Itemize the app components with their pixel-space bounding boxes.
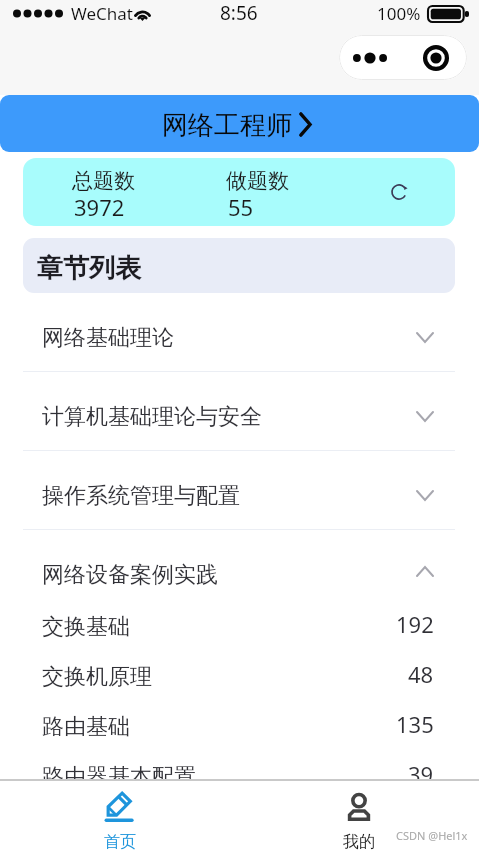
staticText: 我的 [343,832,375,850]
staticText: 操作系统管理与配置 [42,482,240,510]
button[interactable]: 我的 [239,779,479,850]
staticText: 100% [377,2,421,25]
button[interactable]: More menu [339,35,467,80]
button[interactable]: 操作系统管理与配置 [0,451,479,529]
staticText: 章节列表 [37,252,141,285]
staticText: WeChat [71,2,133,25]
staticText: 网络基础理论 [42,324,174,352]
staticText: 总题数 [72,168,135,194]
staticText: 路由基础 [42,713,130,741]
button[interactable]: 交换基础 [0,608,479,658]
staticText: 39 [408,759,434,789]
staticText: 交换机原理 [42,663,152,691]
staticText: 交换基础 [42,613,130,641]
staticText: 路由器基本配置 [42,763,196,791]
button[interactable]: 网络设备案例实践 [0,530,479,608]
button[interactable]: 路由基础 [0,708,479,758]
staticText: 3972 [74,192,125,222]
staticText: 8:56 [220,0,258,26]
staticText: CSDN @Hel1x [396,828,468,843]
button[interactable]: 交换机原理 [0,658,479,708]
staticText: 首页 [104,832,136,850]
staticText: 网络工程师 [162,109,292,142]
button[interactable]: Refresh [386,179,412,205]
button[interactable]: 路由器基本配置 [0,758,479,808]
button[interactable]: 网络工程师 [0,95,479,152]
staticText: 网络设备案例实践 [42,561,218,589]
staticText: 192 [396,609,434,639]
button[interactable]: 计算机基础理论与安全 [0,372,479,450]
staticText: 55 [228,192,254,222]
staticText: 做题数 [226,168,289,194]
staticText: 48 [408,659,434,689]
button[interactable]: 网络基础理论 [0,293,479,371]
button[interactable]: 首页 [0,779,239,850]
staticText: 135 [396,709,434,739]
button[interactable]: 总题数 [23,158,455,226]
staticText: 计算机基础理论与安全 [42,403,262,431]
